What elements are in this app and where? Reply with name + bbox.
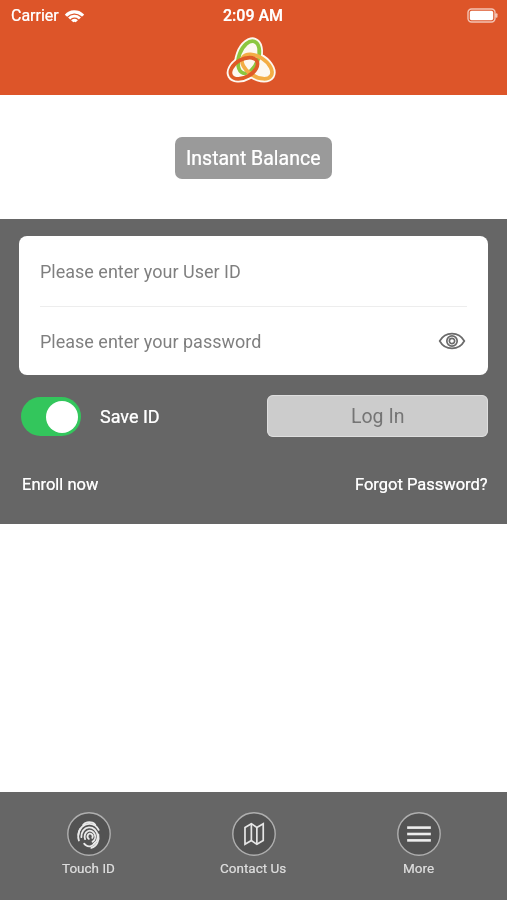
staticText: Save ID [100, 406, 160, 427]
button[interactable]: Enroll now [22, 475, 99, 494]
button[interactable]: Please enter your User ID [19, 236, 488, 306]
staticText: Please enter your password [40, 331, 262, 352]
button[interactable]: More [336, 808, 501, 885]
staticText: Instant Balance [186, 147, 321, 170]
staticText: Contact Us [220, 860, 287, 876]
staticText: 2:09 AM [223, 6, 284, 25]
staticText: Please enter your User ID [40, 261, 241, 282]
button[interactable]: Contact Us [171, 808, 336, 885]
button[interactable]: Log In [267, 395, 488, 437]
button[interactable]: Save ID [21, 397, 160, 436]
staticText: More [403, 860, 435, 876]
button[interactable]: Show password [434, 323, 470, 359]
button[interactable]: Instant Balance [175, 137, 332, 179]
button[interactable]: Forgot Password? [355, 475, 488, 494]
staticText: Log In [351, 405, 405, 428]
button[interactable]: Touch ID [6, 808, 171, 885]
staticText: Touch ID [62, 860, 115, 876]
staticText: Carrier [11, 6, 59, 25]
button[interactable]: Please enter your password [19, 307, 488, 375]
